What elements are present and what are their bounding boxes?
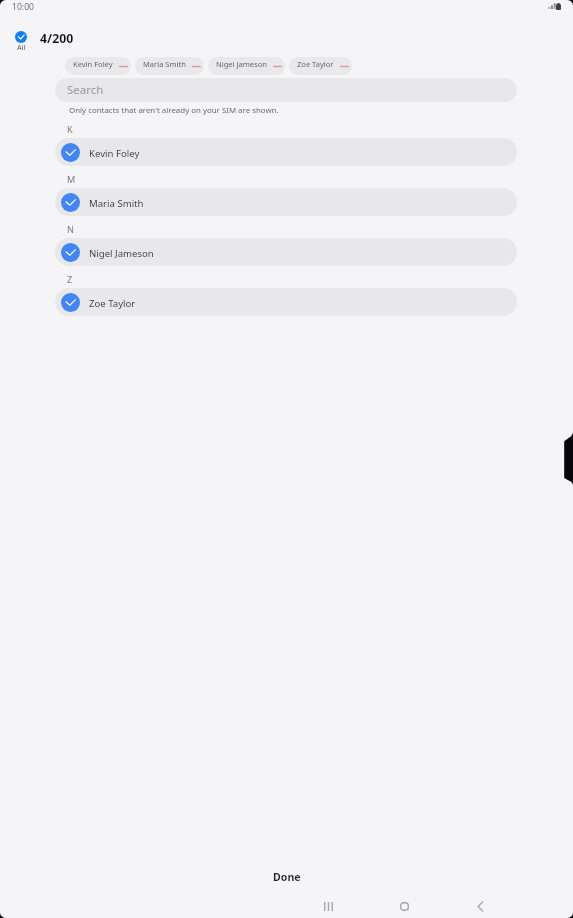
staticText: Z (67, 273, 73, 285)
staticText: Maria Smith (89, 197, 144, 210)
button[interactable]: Kevin Foley (65, 57, 131, 75)
button[interactable]: Done (0, 863, 573, 891)
staticText: Done (273, 870, 301, 884)
button[interactable]: Search (55, 78, 517, 102)
button[interactable]: Nigel Jameson (208, 57, 285, 75)
button[interactable]: Nigel Jameson (55, 238, 517, 266)
button[interactable]: Recent apps (304, 892, 353, 918)
staticText: Only contacts that aren't already on you… (69, 105, 279, 116)
button[interactable]: Kevin Foley (55, 138, 517, 166)
staticText: N (67, 223, 74, 235)
button[interactable]: Back (456, 892, 505, 918)
staticText: All (17, 42, 26, 52)
staticText: Nigel Jameson (216, 59, 267, 69)
button[interactable]: Maria Smith (135, 57, 204, 75)
staticText: K (67, 123, 73, 135)
button[interactable]: Home (380, 892, 429, 918)
button[interactable]: Zoe Taylor (55, 288, 517, 316)
button[interactable]: Zoe Taylor (289, 57, 352, 75)
staticText: Kevin Foley (73, 59, 113, 69)
button[interactable]: Edge panel handle (563, 430, 573, 488)
staticText: 10:00 (12, 1, 34, 13)
button[interactable]: All selected (12, 28, 30, 52)
staticText: Kevin Foley (89, 147, 140, 160)
staticText: Zoe Taylor (297, 59, 334, 69)
button[interactable]: Maria Smith (55, 188, 517, 216)
staticText: Zoe Taylor (89, 297, 136, 310)
staticText: 4/200 (40, 30, 74, 47)
staticText: M (67, 173, 76, 185)
staticText: Nigel Jameson (89, 247, 154, 260)
staticText: Search (67, 82, 104, 98)
staticText: Maria Smith (143, 59, 186, 69)
